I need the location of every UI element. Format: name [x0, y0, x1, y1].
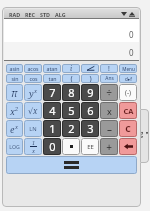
button[interactable]: 6 [81, 102, 99, 119]
staticText: y [29, 87, 34, 99]
button[interactable]: 4 [43, 102, 61, 119]
button[interactable]: 7 [43, 84, 61, 101]
staticText: π [11, 86, 18, 100]
staticText: 5 [68, 103, 75, 118]
staticText: SIDE BAR [140, 131, 149, 140]
button[interactable]: ) [81, 74, 99, 83]
button[interactable]: Menu [119, 64, 137, 73]
button[interactable]: ALG [53, 11, 68, 18]
button[interactable]: asin [6, 64, 23, 73]
staticText: C [125, 123, 131, 135]
button[interactable]: Equals [6, 156, 137, 174]
button[interactable]: REC [23, 11, 38, 18]
staticText: x [32, 147, 36, 154]
button[interactable]: SIDE BAR [140, 109, 149, 163]
button[interactable]: acos [24, 64, 42, 73]
staticText: 1 [49, 121, 56, 136]
button[interactable]: 8 [62, 84, 80, 101]
button[interactable]: STD [38, 11, 53, 18]
button[interactable]: ( [62, 74, 80, 83]
button[interactable]: 9 [81, 84, 99, 101]
button[interactable]: cos [24, 74, 42, 83]
button[interactable]: Decimal point [62, 138, 80, 155]
staticText: cos [29, 75, 38, 82]
button[interactable]: Divide [100, 84, 118, 101]
staticText: 3 [87, 121, 94, 136]
staticText: (-) [125, 88, 131, 97]
staticText: 0 [49, 139, 56, 154]
button[interactable]: Scroll down [120, 10, 128, 18]
button[interactable]: Backspace [119, 138, 137, 155]
staticText: x [15, 123, 19, 131]
staticText: 0 [129, 47, 134, 58]
staticText: 0 [129, 29, 134, 40]
staticText: 7 [49, 85, 56, 100]
staticText: d▸f [125, 76, 132, 82]
button[interactable]: ! [100, 64, 118, 73]
staticText: sin [11, 75, 19, 82]
staticText: REC [25, 11, 36, 18]
staticText: – [107, 122, 112, 136]
staticText: e [10, 123, 15, 135]
staticText: ( [70, 74, 73, 83]
button[interactable]: y [24, 84, 42, 101]
button[interactable]: 5 [62, 102, 80, 119]
staticText: Menu [122, 66, 135, 72]
button[interactable]: LN [24, 120, 42, 137]
button[interactable]: x [6, 102, 23, 119]
button[interactable]: i [62, 64, 80, 73]
button[interactable]: LOG [6, 138, 23, 155]
button[interactable]: tan [43, 74, 61, 83]
staticText: atan [46, 65, 58, 72]
staticText: tan [48, 75, 57, 82]
staticText: CA [123, 106, 134, 116]
staticText: acos [27, 65, 39, 72]
button[interactable]: Plus [100, 138, 118, 155]
button[interactable]: d▸f [119, 74, 137, 83]
button[interactable]: atan [43, 64, 61, 73]
staticText: LOG [9, 143, 20, 150]
staticText: 8 [68, 85, 75, 100]
staticText: 2 [68, 121, 75, 136]
button[interactable]: (-) [119, 84, 137, 101]
staticText: 6 [87, 103, 94, 118]
staticText: x [107, 105, 112, 117]
button[interactable]: √x [24, 102, 42, 119]
staticText: ) [89, 74, 92, 83]
staticText: ALG [55, 11, 66, 18]
button[interactable]: C [119, 120, 137, 137]
staticText: Ans [105, 75, 114, 82]
button[interactable]: Scroll up [128, 10, 136, 18]
staticText: STD [40, 11, 51, 18]
staticText: EE [87, 143, 94, 151]
staticText: 1 [32, 139, 36, 146]
button[interactable]: EE [81, 138, 99, 155]
button[interactable]: Multiply [100, 102, 118, 119]
button[interactable]: 3 [81, 120, 99, 137]
button[interactable]: π [6, 84, 23, 101]
button[interactable]: e [6, 120, 23, 137]
button[interactable]: Minus [100, 120, 118, 137]
button[interactable]: CA [119, 102, 137, 119]
staticText: 9 [87, 85, 94, 100]
button[interactable]: RAD [7, 11, 23, 18]
staticText: x [34, 87, 38, 95]
staticText: i [70, 64, 73, 73]
button[interactable]: 1 [24, 138, 42, 155]
staticText: 2 [15, 105, 19, 113]
staticText: √x [28, 105, 38, 116]
button[interactable]: 2 [62, 120, 80, 137]
staticText: RAD [9, 11, 21, 18]
staticText: + [106, 140, 112, 154]
staticText: x [10, 105, 15, 117]
staticText: asin [9, 65, 20, 72]
button[interactable]: Ans [100, 74, 118, 83]
button[interactable]: 0 [43, 138, 61, 155]
button[interactable]: sin [6, 74, 23, 83]
staticText: ! [108, 64, 110, 73]
button[interactable]: 1 [43, 120, 61, 137]
button[interactable] [81, 64, 99, 73]
staticText: ÷ [106, 86, 112, 100]
staticText: 4 [49, 103, 56, 118]
staticText: LN [29, 125, 37, 133]
